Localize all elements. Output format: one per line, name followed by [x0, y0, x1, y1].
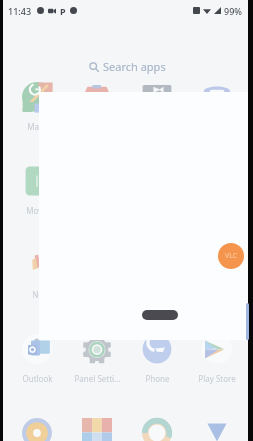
- button[interactable]: Maps: [8, 82, 66, 132]
- button[interactable]: Play Store: [188, 334, 246, 384]
- staticText: Panel Setti...: [74, 373, 121, 384]
- staticText: Ne: [32, 289, 43, 300]
- staticText: Play Store: [198, 373, 236, 384]
- button[interactable]: [188, 418, 246, 441]
- button[interactable]: Outlook: [8, 334, 66, 384]
- button[interactable]: Panel Setti...: [68, 334, 126, 384]
- button[interactable]: Files: [188, 82, 246, 132]
- button[interactable]: Movie: [8, 166, 66, 216]
- staticText: Search apps: [103, 59, 166, 74]
- button[interactable]: MX Pl: [128, 82, 186, 132]
- staticText: Outlook: [22, 373, 53, 384]
- button[interactable]: VLC: [218, 243, 244, 269]
- staticText: 11:43: [8, 5, 32, 17]
- button[interactable]: Home: [142, 310, 178, 320]
- staticText: VLC: [225, 251, 238, 261]
- button[interactable]: Search apps: [89, 59, 166, 74]
- staticText: 99%: [224, 5, 242, 17]
- staticText: P: [60, 5, 66, 17]
- button[interactable]: Mess: [68, 82, 126, 132]
- staticText: Movie: [26, 205, 49, 216]
- button[interactable]: Phone: [128, 334, 186, 384]
- staticText: Maps: [27, 121, 48, 132]
- button[interactable]: Ne: [8, 250, 66, 300]
- staticText: Phone: [145, 373, 170, 384]
- button[interactable]: [8, 418, 66, 441]
- button[interactable]: [188, 250, 246, 289]
- button[interactable]: [68, 418, 126, 441]
- button[interactable]: [128, 418, 186, 441]
